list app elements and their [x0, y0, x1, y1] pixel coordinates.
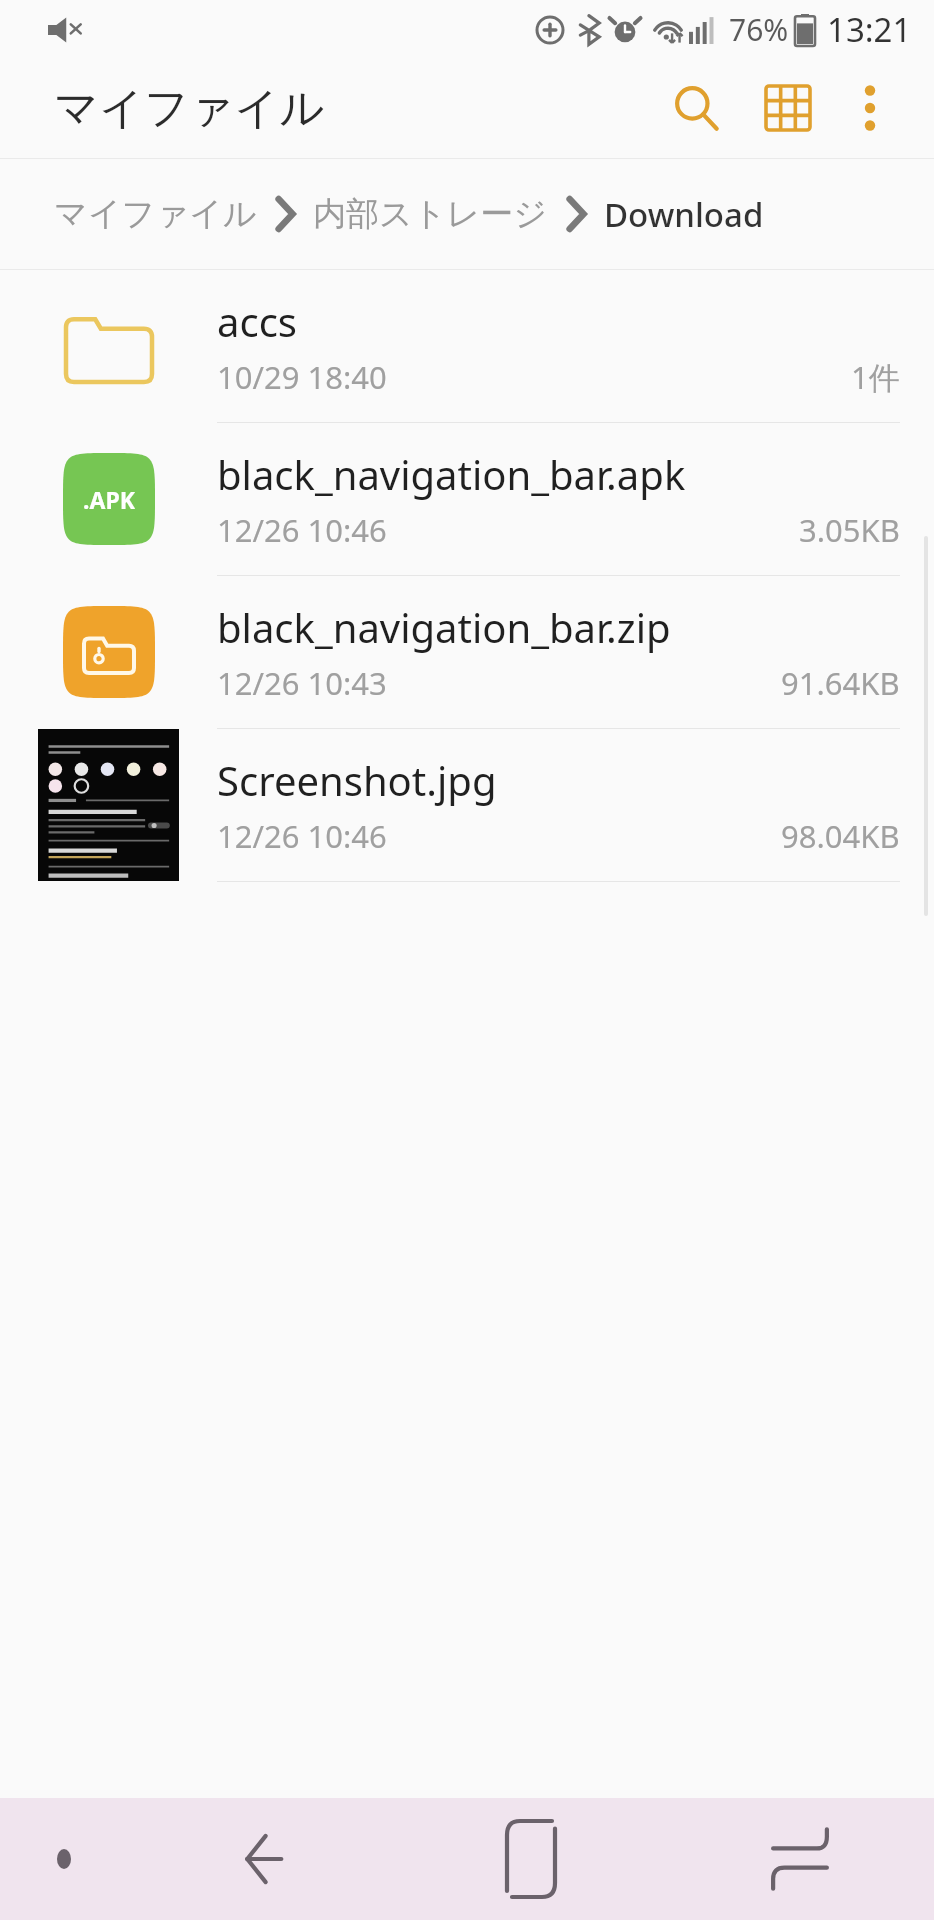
- staticText: 内部ストレージ: [313, 193, 548, 235]
- staticText: 98.04KB: [781, 815, 900, 857]
- staticText: 12/26 10:43: [217, 662, 387, 704]
- button[interactable]: Search: [650, 62, 742, 154]
- button[interactable]: black_navigation_bar.zip: [0, 576, 934, 728]
- staticText: Download: [604, 192, 764, 237]
- staticText: 12/26 10:46: [217, 509, 387, 551]
- button[interactable]: accs: [0, 270, 934, 422]
- staticText: accs: [217, 294, 297, 348]
- staticText: 76%: [729, 9, 789, 50]
- button[interactable]: More options: [834, 72, 906, 144]
- button[interactable]: 内部ストレージ: [313, 193, 548, 235]
- staticText: 1件: [851, 356, 900, 398]
- button[interactable]: Hide navigation bar: [0, 1798, 128, 1920]
- staticText: マイファイル: [54, 81, 325, 136]
- button[interactable]: .APK: [0, 423, 934, 575]
- staticText: 13:21: [827, 7, 912, 52]
- staticText: 10/29 18:40: [217, 356, 387, 398]
- staticText: Screenshot.jpg: [217, 753, 497, 807]
- staticText: 12/26 10:46: [217, 815, 387, 857]
- button[interactable]: Back: [665, 1798, 934, 1920]
- button[interactable]: Grid view: [742, 62, 834, 154]
- staticText: マイファイル: [54, 193, 257, 235]
- button[interactable]: Home: [396, 1798, 665, 1920]
- button[interactable]: Recents: [128, 1798, 396, 1920]
- staticText: black_navigation_bar.zip: [217, 600, 671, 654]
- staticText: 3.05KB: [799, 509, 900, 551]
- staticText: 91.64KB: [781, 662, 900, 704]
- staticText: black_navigation_bar.apk: [217, 447, 686, 501]
- button[interactable]: Download: [604, 192, 764, 237]
- staticText: .APK: [83, 484, 135, 515]
- button[interactable]: マイファイル: [54, 193, 257, 235]
- button[interactable]: Screenshot.jpg: [0, 729, 934, 881]
